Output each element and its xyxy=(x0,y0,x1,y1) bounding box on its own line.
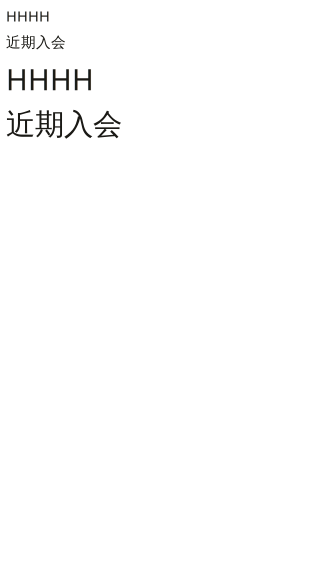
staticText: 近期入会 xyxy=(6,33,66,51)
staticText: 近期入会 xyxy=(6,106,122,142)
staticText: HHHH xyxy=(6,59,94,98)
staticText: HHHH xyxy=(6,6,50,25)
